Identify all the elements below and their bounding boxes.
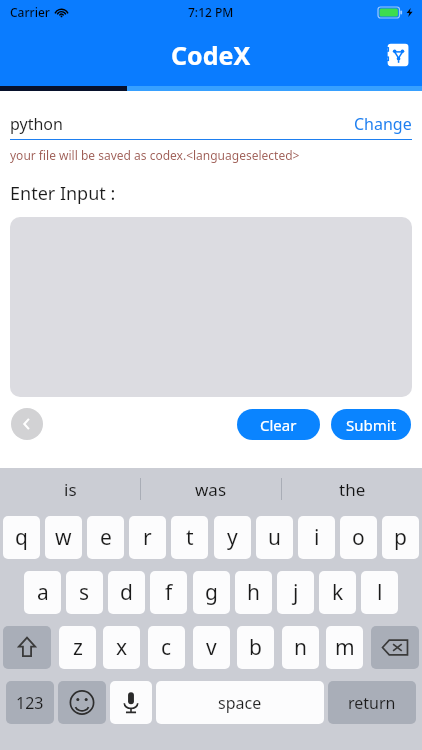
staticText: g xyxy=(205,578,218,607)
staticText: z xyxy=(73,633,83,662)
button[interactable]: Shift xyxy=(3,626,51,669)
button[interactable]: Emoji xyxy=(58,681,106,724)
button[interactable]: u xyxy=(256,516,293,559)
staticText: Change xyxy=(354,113,412,135)
button[interactable]: i xyxy=(298,516,335,559)
button[interactable]: 123 xyxy=(6,681,54,724)
staticText: CodeX xyxy=(171,38,251,72)
button[interactable]: z xyxy=(59,626,96,669)
staticText: was xyxy=(195,478,227,501)
button[interactable]: o xyxy=(340,516,377,559)
staticText: 7:12 PM xyxy=(188,4,234,20)
button[interactable]: Back xyxy=(11,408,43,440)
button[interactable]: q xyxy=(3,516,40,559)
button[interactable]: y xyxy=(214,516,251,559)
staticText: space xyxy=(218,692,262,714)
staticText: x xyxy=(116,633,128,662)
staticText: a xyxy=(37,578,49,607)
button[interactable]: v xyxy=(193,626,230,669)
button[interactable]: return xyxy=(328,681,416,724)
staticText: o xyxy=(352,523,365,552)
button[interactable]: h xyxy=(235,571,272,614)
staticText: Clear xyxy=(260,415,297,435)
button[interactable]: Flowchart xyxy=(382,40,412,70)
staticText: the xyxy=(339,478,366,501)
staticText: d xyxy=(120,578,133,607)
button[interactable]: f xyxy=(150,571,187,614)
staticText: y xyxy=(227,523,238,552)
button[interactable]: space xyxy=(156,681,324,724)
staticText: is xyxy=(64,478,77,501)
staticText: n xyxy=(294,633,307,662)
staticText: f xyxy=(165,578,173,607)
button[interactable]: r xyxy=(129,516,166,559)
staticText: m xyxy=(335,633,355,662)
button[interactable]: Backspace xyxy=(371,626,419,669)
staticText: e xyxy=(100,523,112,552)
button[interactable]: Clear xyxy=(237,409,320,440)
button[interactable]: t xyxy=(171,516,208,559)
button[interactable]: g xyxy=(193,571,230,614)
staticText: q xyxy=(15,523,28,552)
staticText: s xyxy=(79,578,90,607)
button[interactable]: j xyxy=(277,571,314,614)
staticText: return xyxy=(348,692,396,714)
button[interactable]: w xyxy=(45,516,82,559)
staticText: 123 xyxy=(16,692,44,714)
staticText: k xyxy=(332,578,344,607)
staticText: h xyxy=(247,578,260,607)
button[interactable]: Submit xyxy=(331,409,411,440)
button[interactable]: Dictate xyxy=(110,681,152,724)
staticText: your file will be saved as codex.<langua… xyxy=(10,147,300,163)
button[interactable]: b xyxy=(237,626,274,669)
button[interactable]: is xyxy=(0,468,140,510)
staticText: t xyxy=(186,523,194,552)
button[interactable]: a xyxy=(24,571,61,614)
button[interactable]: e xyxy=(87,516,124,559)
staticText: p xyxy=(394,523,407,552)
staticText: r xyxy=(143,523,152,552)
staticText: Carrier xyxy=(10,4,50,20)
staticText: Submit xyxy=(346,415,397,435)
staticText: u xyxy=(268,523,281,552)
button[interactable]: x xyxy=(103,626,140,669)
staticText: python xyxy=(10,113,354,135)
button[interactable]: d xyxy=(108,571,145,614)
staticText: i xyxy=(314,523,320,552)
button[interactable]: k xyxy=(319,571,356,614)
button[interactable]: p xyxy=(382,516,419,559)
button[interactable]: c xyxy=(148,626,185,669)
staticText: j xyxy=(293,578,299,607)
staticText: c xyxy=(161,633,172,662)
button[interactable]: m xyxy=(326,626,363,669)
button[interactable]: l xyxy=(361,571,398,614)
staticText: Enter Input : xyxy=(10,181,116,206)
button[interactable]: s xyxy=(66,571,103,614)
button[interactable]: Change xyxy=(354,113,412,135)
staticText: v xyxy=(206,633,217,662)
staticText: l xyxy=(377,578,383,607)
button[interactable]: the xyxy=(282,468,422,510)
staticText: b xyxy=(249,633,262,662)
button[interactable]: n xyxy=(282,626,319,669)
staticText: w xyxy=(55,523,72,552)
button[interactable]: was xyxy=(141,468,281,510)
